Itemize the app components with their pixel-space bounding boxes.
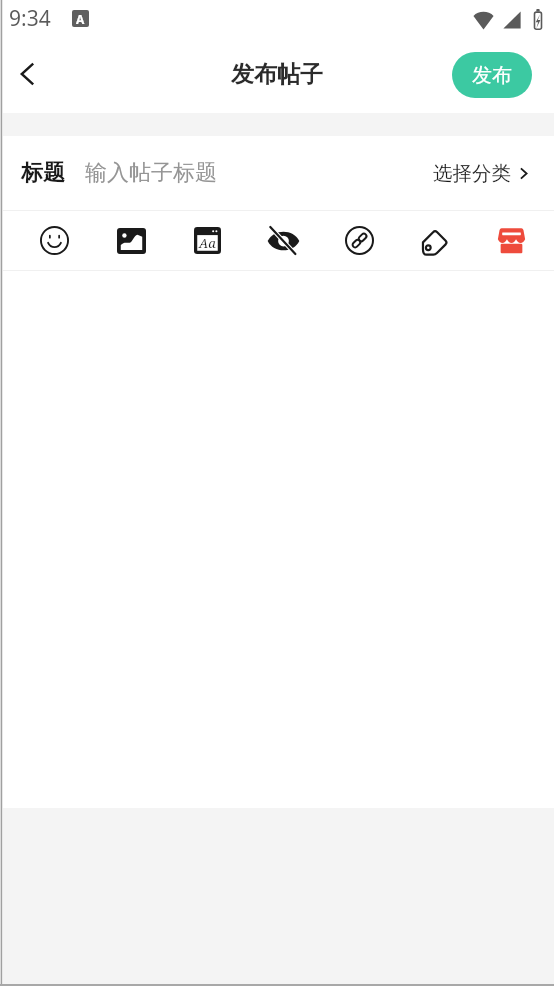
button[interactable]: Insert image: [93, 211, 169, 270]
staticText: Aa: [199, 234, 216, 252]
button[interactable]: Shop: [473, 211, 549, 270]
button[interactable]: Hide content: [245, 211, 321, 270]
staticText: 选择分类: [433, 161, 511, 186]
button[interactable]: Back: [6, 52, 50, 96]
button[interactable]: Emoji: [16, 211, 93, 270]
staticText: 发布: [472, 63, 512, 88]
staticText: 发布帖子: [231, 60, 323, 89]
button[interactable]: Insert link: [321, 211, 397, 270]
button[interactable]: 发布: [452, 52, 532, 98]
staticText: 输入帖子标题: [85, 159, 217, 187]
staticText: 标题: [21, 159, 65, 187]
staticText: A: [76, 11, 85, 27]
button[interactable]: 选择分类: [433, 155, 530, 192]
button[interactable]: Text style: [169, 211, 245, 270]
staticText: 9:34: [9, 4, 51, 33]
button[interactable]: Add tag: [397, 211, 473, 270]
